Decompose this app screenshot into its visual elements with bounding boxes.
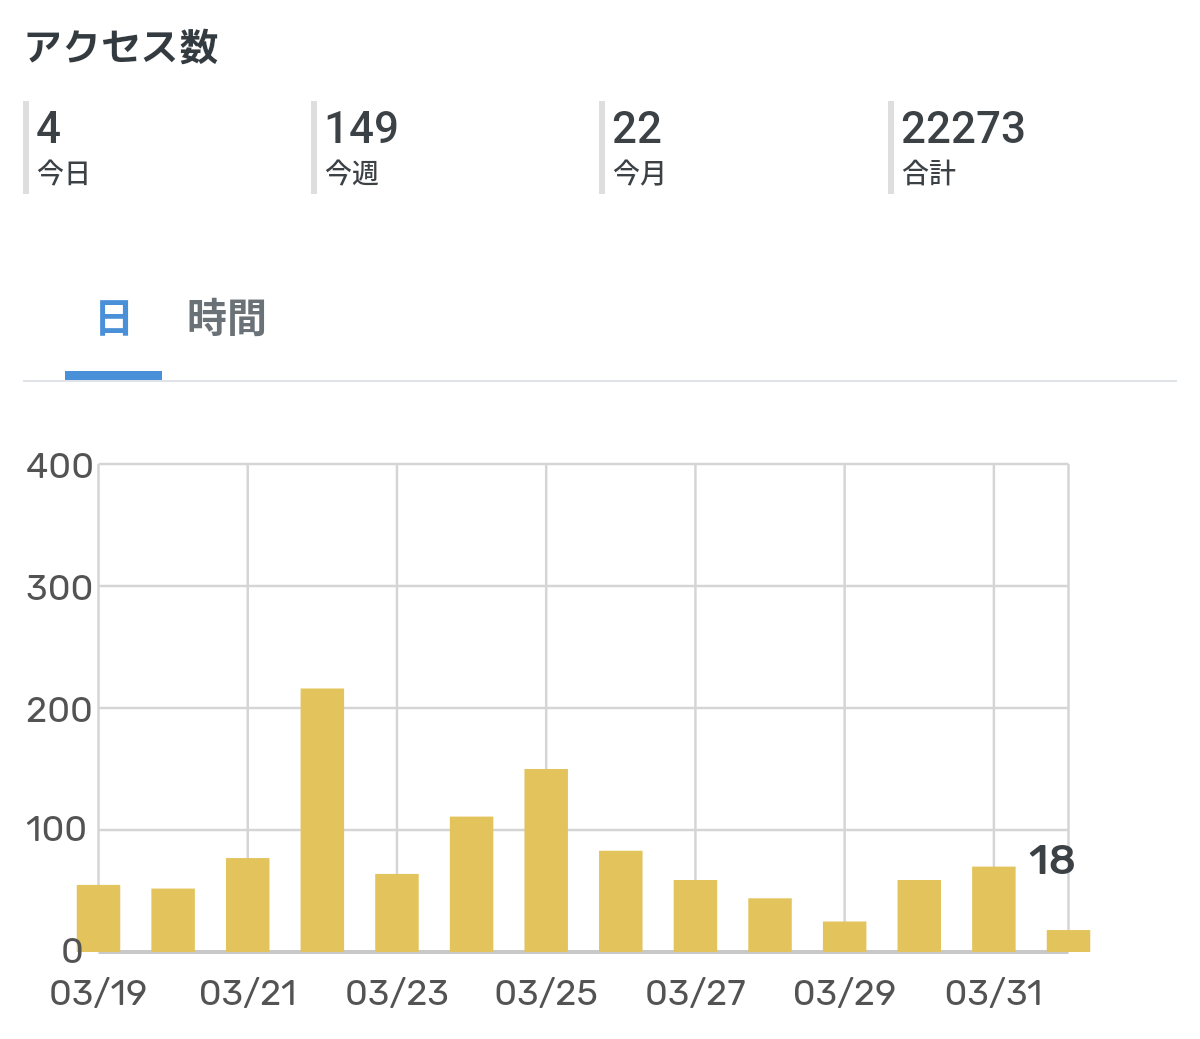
- staticText: 今日: [37, 152, 91, 191]
- staticText: 149: [324, 102, 400, 154]
- button[interactable]: 22: [599, 98, 888, 193]
- staticText: 合計: [902, 152, 956, 191]
- button[interactable]: 4: [23, 98, 311, 193]
- button[interactable]: 日: [65, 272, 162, 346]
- staticText: 日: [94, 286, 134, 344]
- staticText: 今月: [613, 152, 667, 191]
- staticText: 22: [612, 102, 663, 154]
- staticText: 4: [36, 102, 62, 154]
- other: 日別アクセス数グラフ: [0, 0, 1200, 1039]
- staticText: アクセス数: [23, 19, 219, 73]
- button[interactable]: 22273: [888, 98, 1177, 193]
- staticText: 時間: [187, 286, 267, 344]
- staticText: 22273: [901, 102, 1027, 154]
- button[interactable]: 149: [311, 98, 599, 193]
- button[interactable]: 時間: [162, 272, 292, 346]
- staticText: 今週: [325, 152, 379, 191]
